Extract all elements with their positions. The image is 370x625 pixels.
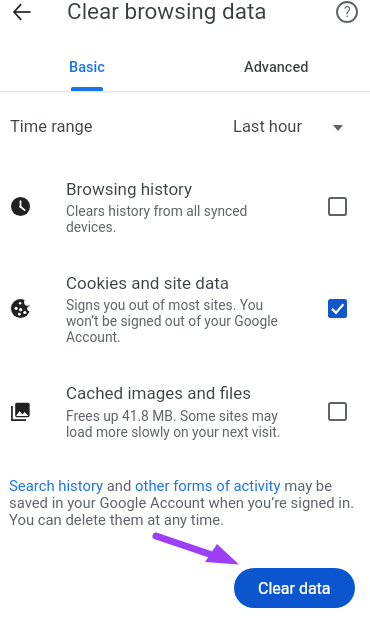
staticText: Clears history from all synced devices. <box>66 203 256 235</box>
staticText: Clear data <box>258 579 331 598</box>
staticText: Browsing history <box>66 179 256 199</box>
button[interactable]: Browsing history <box>328 197 347 216</box>
staticText: Cookies and site data <box>66 273 296 293</box>
button[interactable]: Cached images and files <box>328 402 347 421</box>
staticText: Time range <box>10 117 93 136</box>
button[interactable]: Time range <box>0 94 370 146</box>
staticText: Advanced <box>244 59 309 76</box>
button[interactable]: Advanced <box>185 48 367 88</box>
staticText: Clear browsing data <box>67 0 267 24</box>
staticText: Frees up 41.8 MB. Some sites may load mo… <box>66 408 298 440</box>
button[interactable] <box>0 266 370 352</box>
button[interactable] <box>0 172 370 240</box>
staticText: Basic <box>69 59 105 76</box>
staticText: Signs you out of most sites. You won’t b… <box>66 297 296 345</box>
button[interactable]: Cookies and site data <box>328 299 347 318</box>
button[interactable]: Clear data <box>234 568 355 608</box>
staticText: Search history and other forms of activi… <box>9 477 359 528</box>
staticText: ? <box>344 4 351 20</box>
staticText: Last hour <box>233 117 303 136</box>
button[interactable]: Help and feedback <box>330 0 364 29</box>
button[interactable] <box>0 378 370 446</box>
staticText: Cached images and files <box>66 383 298 403</box>
button[interactable]: Navigate up <box>5 0 39 29</box>
button[interactable]: Basic <box>0 48 173 88</box>
